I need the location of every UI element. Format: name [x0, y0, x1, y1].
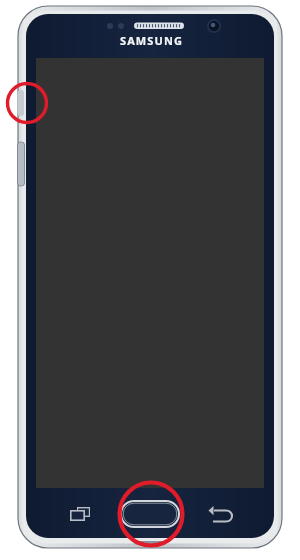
- button[interactable]: Home button: [121, 501, 179, 527]
- button[interactable]: Back: [202, 496, 242, 534]
- button[interactable]: Recents: [58, 496, 98, 534]
- staticText: SAMSUNG: [120, 33, 184, 48]
- button[interactable]: Power button: [16, 88, 28, 118]
- button[interactable]: Volume buttons: [16, 140, 28, 188]
